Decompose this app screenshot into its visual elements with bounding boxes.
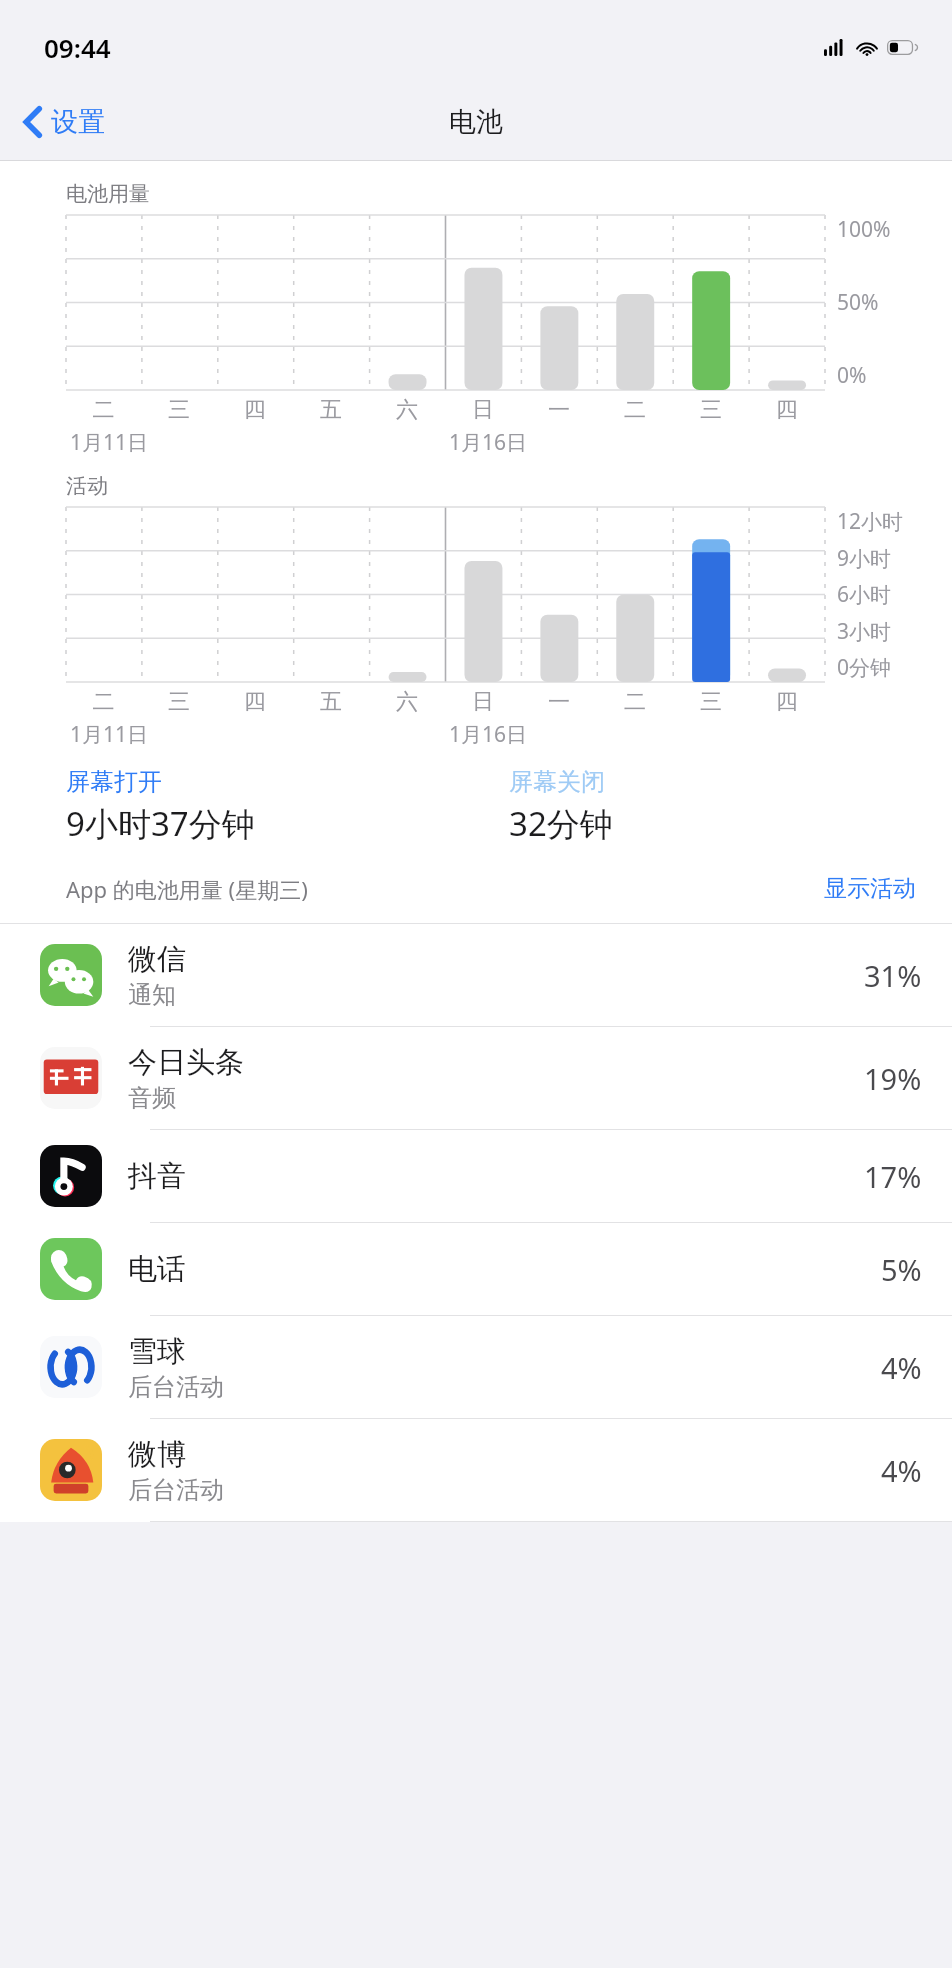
staticText: 二 xyxy=(597,688,673,716)
staticText: 一 xyxy=(521,396,597,424)
button[interactable]: 今日头条 xyxy=(0,1027,952,1129)
staticText: 三 xyxy=(141,396,217,424)
staticText: 50% xyxy=(837,288,879,317)
staticText: 31% xyxy=(864,956,922,995)
staticText: 音频 xyxy=(128,1083,176,1113)
button[interactable]: 抖音 xyxy=(0,1130,952,1222)
staticText: 五 xyxy=(293,688,369,716)
button[interactable]: 微博 xyxy=(0,1419,952,1521)
staticText: 电池用量 xyxy=(66,181,150,207)
staticText: 09:44 xyxy=(44,30,111,65)
staticText: 微信 xyxy=(128,941,186,978)
staticText: 9小时37分钟 xyxy=(66,801,255,846)
button[interactable]: 电话 xyxy=(0,1223,952,1315)
staticText: 二 xyxy=(597,396,673,424)
staticText: 二 xyxy=(66,688,141,716)
staticText: 抖音 xyxy=(128,1158,186,1195)
staticText: 1月16日 xyxy=(449,428,825,457)
staticText: 三 xyxy=(673,396,749,424)
staticText: 19% xyxy=(864,1059,922,1098)
staticText: 四 xyxy=(749,396,825,424)
button[interactable]: 微信 xyxy=(0,924,952,1026)
staticText: 6小时 xyxy=(837,580,892,609)
staticText: 屏幕打开 xyxy=(66,767,162,797)
staticText: 活动 xyxy=(66,473,108,499)
staticText: 四 xyxy=(749,688,825,716)
staticText: 17% xyxy=(864,1157,922,1196)
staticText: 设置 xyxy=(51,105,105,139)
staticText: 5% xyxy=(881,1250,922,1289)
staticText: 100% xyxy=(837,215,891,244)
staticText: 通知 xyxy=(128,980,176,1010)
staticText: 1月11日 xyxy=(70,720,445,749)
staticText: 4% xyxy=(881,1348,922,1387)
staticText: 电话 xyxy=(128,1251,186,1288)
staticText: 微博 xyxy=(128,1436,186,1473)
staticText: 1月11日 xyxy=(70,428,445,457)
button[interactable]: 设置 xyxy=(0,97,119,147)
staticText: 9小时 xyxy=(837,544,892,573)
staticText: 三 xyxy=(673,688,749,716)
staticText: 后台活动 xyxy=(128,1372,224,1402)
staticText: 12小时 xyxy=(837,507,904,536)
staticText: 屏幕关闭 xyxy=(509,767,605,797)
staticText: App 的电池用量 (星期三) xyxy=(66,874,308,904)
staticText: 4% xyxy=(881,1451,922,1490)
staticText: 后台活动 xyxy=(128,1475,224,1505)
staticText: 电池 xyxy=(449,105,503,139)
staticText: 日 xyxy=(445,688,521,716)
staticText: 0分钟 xyxy=(837,653,892,682)
staticText: 日 xyxy=(445,396,521,424)
staticText: 四 xyxy=(217,396,293,424)
staticText: 1月16日 xyxy=(449,720,825,749)
staticText: 二 xyxy=(66,396,141,424)
staticText: 显示活动 xyxy=(824,874,916,903)
staticText: 六 xyxy=(369,396,445,424)
staticText: 三 xyxy=(141,688,217,716)
staticText: 一 xyxy=(521,688,597,716)
staticText: 雪球 xyxy=(128,1333,186,1370)
staticText: 3小时 xyxy=(837,617,892,646)
staticText: 五 xyxy=(293,396,369,424)
staticText: 六 xyxy=(369,688,445,716)
staticText: 0% xyxy=(837,361,867,390)
button[interactable]: 显示活动 xyxy=(818,868,922,909)
staticText: 今日头条 xyxy=(128,1044,244,1081)
staticText: 32分钟 xyxy=(509,801,613,846)
staticText: 四 xyxy=(217,688,293,716)
button[interactable]: 雪球 xyxy=(0,1316,952,1418)
